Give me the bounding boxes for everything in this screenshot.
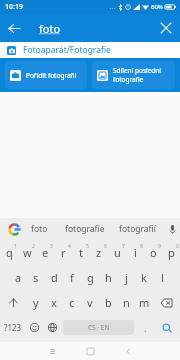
button[interactable]: foto — [28, 14, 152, 42]
staticText: 2 — [32, 243, 35, 250]
staticText: j — [125, 270, 128, 285]
button[interactable]: h — [99, 265, 117, 290]
staticText: t — [79, 245, 83, 260]
staticText: 8 — [140, 243, 143, 250]
button[interactable]: o — [144, 240, 162, 265]
button[interactable]: fotografie — [58, 218, 111, 240]
button[interactable]: z — [90, 240, 108, 265]
staticText: q — [6, 245, 13, 260]
staticText: f — [70, 270, 74, 285]
staticText: Fotoaparát/Fotografie — [23, 44, 111, 56]
button[interactable]: b — [99, 290, 117, 315]
button[interactable]: foto — [20, 218, 58, 240]
staticText: 3 — [50, 243, 53, 250]
button[interactable]: Voice input — [164, 218, 180, 240]
button[interactable]: w — [18, 240, 36, 265]
staticText: 0 — [176, 243, 179, 250]
button[interactable]: e — [36, 240, 54, 265]
button[interactable]: Change language — [43, 315, 61, 340]
button[interactable]: d — [45, 265, 63, 290]
staticText: y — [33, 295, 39, 310]
staticText: 9 — [158, 243, 161, 250]
button[interactable]: fotografií — [111, 218, 164, 240]
staticText: ?123 — [4, 322, 22, 333]
staticText: 10:19 — [5, 2, 23, 12]
button[interactable]: k — [135, 265, 153, 290]
staticText: l — [161, 270, 164, 285]
button[interactable]: i — [126, 240, 144, 265]
staticText: 7 — [122, 243, 125, 250]
staticText: h — [105, 270, 112, 285]
staticText: 5 — [86, 243, 89, 250]
button[interactable]: . — [136, 315, 154, 340]
button[interactable]: CS · EN — [63, 320, 134, 335]
button[interactable]: n — [117, 290, 135, 315]
button[interactable]: Pořídit fotografii — [5, 61, 87, 89]
button[interactable]: c — [63, 290, 81, 315]
button[interactable]: g — [81, 265, 99, 290]
staticText: u — [114, 245, 121, 260]
button[interactable]: Fotoaparát/Fotografie — [0, 42, 180, 58]
staticText: Sdílení poslední — [113, 66, 162, 75]
button[interactable]: Recents — [33, 342, 71, 360]
button[interactable]: Clear — [152, 14, 180, 42]
button[interactable]: Back — [109, 342, 147, 360]
button[interactable]: a — [9, 265, 27, 290]
staticText: e — [42, 245, 49, 260]
button[interactable]: u — [108, 240, 126, 265]
button[interactable]: Backspace — [153, 290, 180, 315]
button[interactable]: y — [27, 290, 45, 315]
staticText: b — [105, 295, 112, 310]
button[interactable]: x — [45, 290, 63, 315]
staticText: fotografie — [113, 75, 144, 84]
button[interactable]: f — [63, 265, 81, 290]
button[interactable]: Sdílení poslední — [92, 61, 175, 89]
staticText: w — [23, 245, 32, 260]
button[interactable]: v — [81, 290, 99, 315]
button[interactable]: j — [117, 265, 135, 290]
staticText: 60% — [151, 3, 163, 11]
button[interactable]: Search — [154, 315, 180, 340]
button[interactable]: Home — [71, 342, 109, 360]
staticText: d — [51, 270, 58, 285]
staticText: p — [168, 245, 175, 260]
staticText: k — [141, 270, 147, 285]
button[interactable]: m — [135, 290, 153, 315]
button[interactable]: ?123 — [0, 315, 25, 340]
staticText: v — [87, 295, 93, 310]
staticText: n — [123, 295, 130, 310]
staticText: 4 — [68, 243, 71, 250]
staticText: CS · EN — [88, 323, 110, 332]
staticText: fotografií — [119, 223, 156, 235]
staticText: g — [87, 270, 94, 285]
staticText: c — [69, 295, 75, 310]
staticText: 1 — [14, 243, 17, 250]
button[interactable]: l — [153, 265, 171, 290]
staticText: z — [96, 245, 102, 260]
staticText: fotografie — [65, 223, 105, 235]
staticText: a — [15, 270, 22, 285]
button[interactable]: Emoji — [25, 315, 43, 340]
staticText: x — [51, 295, 57, 310]
button[interactable]: q — [0, 240, 18, 265]
button[interactable]: Back — [0, 14, 28, 42]
staticText: o — [150, 245, 157, 260]
staticText: foto — [31, 223, 48, 235]
staticText: Pořídit fotografii — [26, 71, 77, 80]
staticText: m — [139, 295, 150, 310]
button[interactable]: r — [54, 240, 72, 265]
button[interactable]: p — [162, 240, 180, 265]
staticText: s — [33, 270, 39, 285]
button[interactable]: t — [72, 240, 90, 265]
staticText: i — [134, 245, 137, 260]
button[interactable]: Shift — [0, 290, 27, 315]
button[interactable]: s — [27, 265, 45, 290]
staticText: . — [144, 322, 147, 334]
staticText: foto — [39, 21, 61, 36]
staticText: r — [61, 245, 66, 260]
staticText: 6 — [104, 243, 107, 250]
